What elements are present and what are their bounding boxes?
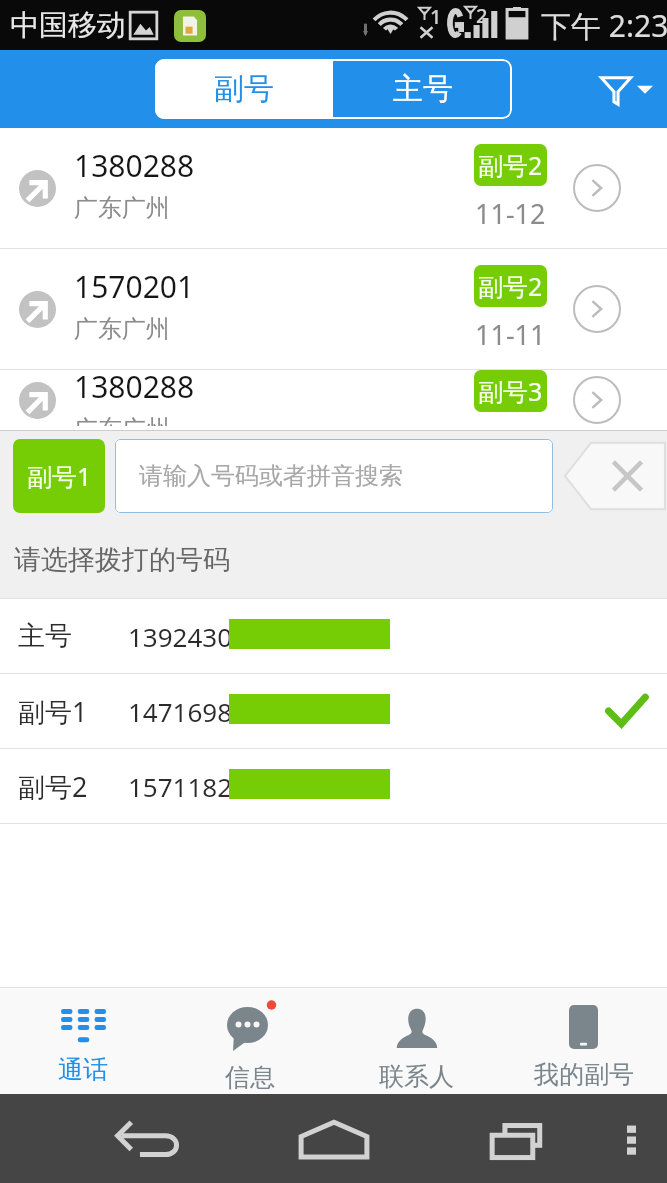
button[interactable]: 1570201 [0,249,667,369]
staticText: 主号 [393,70,453,108]
staticText: 请选择拨打的号码 [14,543,230,577]
staticText: 副号2 [18,768,88,805]
button[interactable]: Details [573,164,621,212]
button[interactable]: 通话 [0,1000,166,1094]
staticText: 副号1 [18,693,88,730]
button[interactable]: 信息 [166,1000,333,1094]
button[interactable]: Details [573,285,621,333]
button[interactable]: Filter [599,72,653,106]
staticText: 副号 [214,70,274,108]
button[interactable]: 主号 [0,599,667,673]
staticText: 2 [476,2,488,29]
staticText: 副号1 [27,459,92,493]
button[interactable]: 副号2 [0,749,667,823]
staticText: 1571182 [128,769,233,804]
button[interactable]: 副号1 [0,674,667,748]
staticText: 副号2 [478,269,543,303]
staticText: 信息 [225,1062,275,1093]
staticText: 11-11 [475,316,546,353]
staticText: 广东广州 [74,414,170,426]
staticText: 1380288 [74,366,195,407]
staticText: 1 [430,3,442,30]
staticText: 联系人 [379,1061,454,1092]
staticText: 1570201 [74,266,195,307]
staticText: 副号3 [478,374,543,408]
staticText: 广东广州 [74,314,170,344]
staticText: 我的副号 [534,1059,634,1090]
staticText: 请输入号码或者拼音搜索 [139,461,403,491]
button[interactable]: Details [573,376,621,424]
button[interactable]: 主号 [333,59,512,119]
staticText: 1471698 [128,694,233,729]
staticText: 副号2 [478,148,543,182]
staticText: 11-12 [475,195,546,232]
button[interactable]: Back [108,1110,188,1166]
button[interactable]: 请输入号码或者拼音搜索 [115,439,553,513]
button[interactable]: Home [290,1112,378,1166]
staticText: 1392430 [128,619,233,654]
button[interactable]: Delete [563,439,667,513]
staticText: 广东广州 [74,193,170,223]
staticText: 下午 2:23 [541,5,667,46]
button[interactable]: More options [606,1112,656,1166]
button[interactable]: Recents [480,1116,560,1166]
button[interactable]: 联系人 [333,1000,500,1094]
staticText: 主号 [18,619,72,653]
button[interactable]: 副号1 [13,439,105,513]
staticText: 中国移动 [10,7,126,44]
staticText: 1380288 [74,145,195,186]
button[interactable]: 我的副号 [500,1000,667,1094]
button[interactable]: 副号 [155,59,333,119]
button[interactable]: 1380288 [0,128,667,248]
button[interactable]: 1380288 [0,370,667,430]
staticText: 通话 [58,1054,108,1085]
